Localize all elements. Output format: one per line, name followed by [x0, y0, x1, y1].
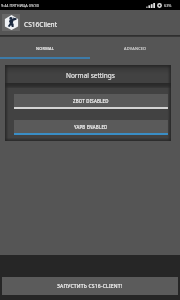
- staticText: Normal settings: [66, 71, 115, 80]
- staticText: ZBOT DISABLED: [73, 98, 109, 104]
- staticText: NORMAL: [36, 46, 54, 51]
- staticText: YAPB ENABLED: [74, 124, 108, 130]
- staticText: CS16Client: [24, 20, 58, 29]
- button[interactable]: ZBOT DISABLED: [14, 94, 168, 109]
- staticText: 9:44 ПЯТНИЦА 09/30: [1, 3, 39, 8]
- button[interactable]: YAPB ENABLED: [14, 120, 168, 135]
- button[interactable]: ЗАПУСТИТЬ CS16-CLIENT!: [2, 277, 178, 295]
- staticText: 63%: [164, 3, 172, 8]
- staticText: ЗАПУСТИТЬ CS16-CLIENT!: [57, 283, 123, 290]
- button[interactable]: ADVANCED: [90, 37, 180, 57]
- button[interactable]: NORMAL: [0, 37, 90, 57]
- staticText: ADVANCED: [124, 46, 147, 51]
